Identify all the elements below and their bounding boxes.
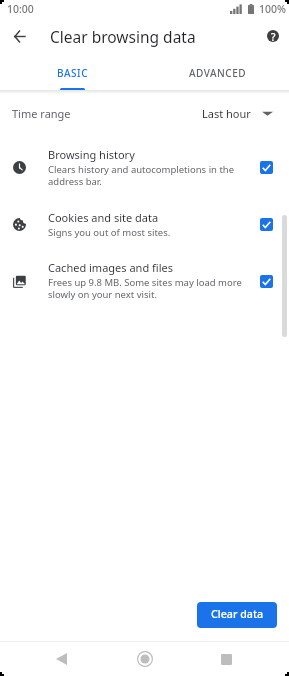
- button[interactable]: Cached images and files: [0, 251, 289, 310]
- button[interactable]: Recent apps: [206, 642, 247, 676]
- button[interactable]: Cookies and site data checkbox: [260, 218, 273, 231]
- staticText: Browsing history: [48, 147, 135, 162]
- staticText: Frees up 9.8 MB. Some sites may load mor…: [48, 276, 253, 301]
- staticText: Time range: [12, 106, 71, 121]
- button[interactable]: BASIC: [0, 58, 145, 88]
- button[interactable]: Home: [124, 642, 165, 676]
- button[interactable]: Clear data: [197, 602, 277, 628]
- button[interactable]: ADVANCED: [145, 58, 289, 88]
- button[interactable]: Browsing history checkbox: [260, 161, 273, 174]
- staticText: Clear browsing data: [50, 26, 196, 47]
- staticText: ADVANCED: [189, 66, 247, 80]
- button[interactable]: Cached images and files checkbox: [260, 275, 273, 288]
- staticText: Clear data: [211, 607, 264, 622]
- staticText: Cookies and site data: [48, 210, 159, 225]
- staticText: BASIC: [57, 66, 88, 80]
- staticText: Last hour: [202, 106, 251, 121]
- button[interactable]: Time range: [0, 91, 289, 136]
- button[interactable]: Navigate up: [6, 23, 33, 50]
- staticText: Signs you out of most sites.: [48, 226, 171, 239]
- button[interactable]: Back: [41, 642, 82, 676]
- button[interactable]: Browsing history: [0, 137, 289, 197]
- staticText: ?: [271, 30, 276, 42]
- staticText: 10:00: [7, 2, 34, 16]
- button[interactable]: Cookies and site data: [0, 197, 289, 251]
- staticText: Cached images and files: [48, 260, 173, 275]
- button[interactable]: Help and feedback: [259, 22, 286, 49]
- staticText: 100%: [259, 2, 286, 16]
- staticText: Clears history and autocompletions in th…: [48, 163, 253, 188]
